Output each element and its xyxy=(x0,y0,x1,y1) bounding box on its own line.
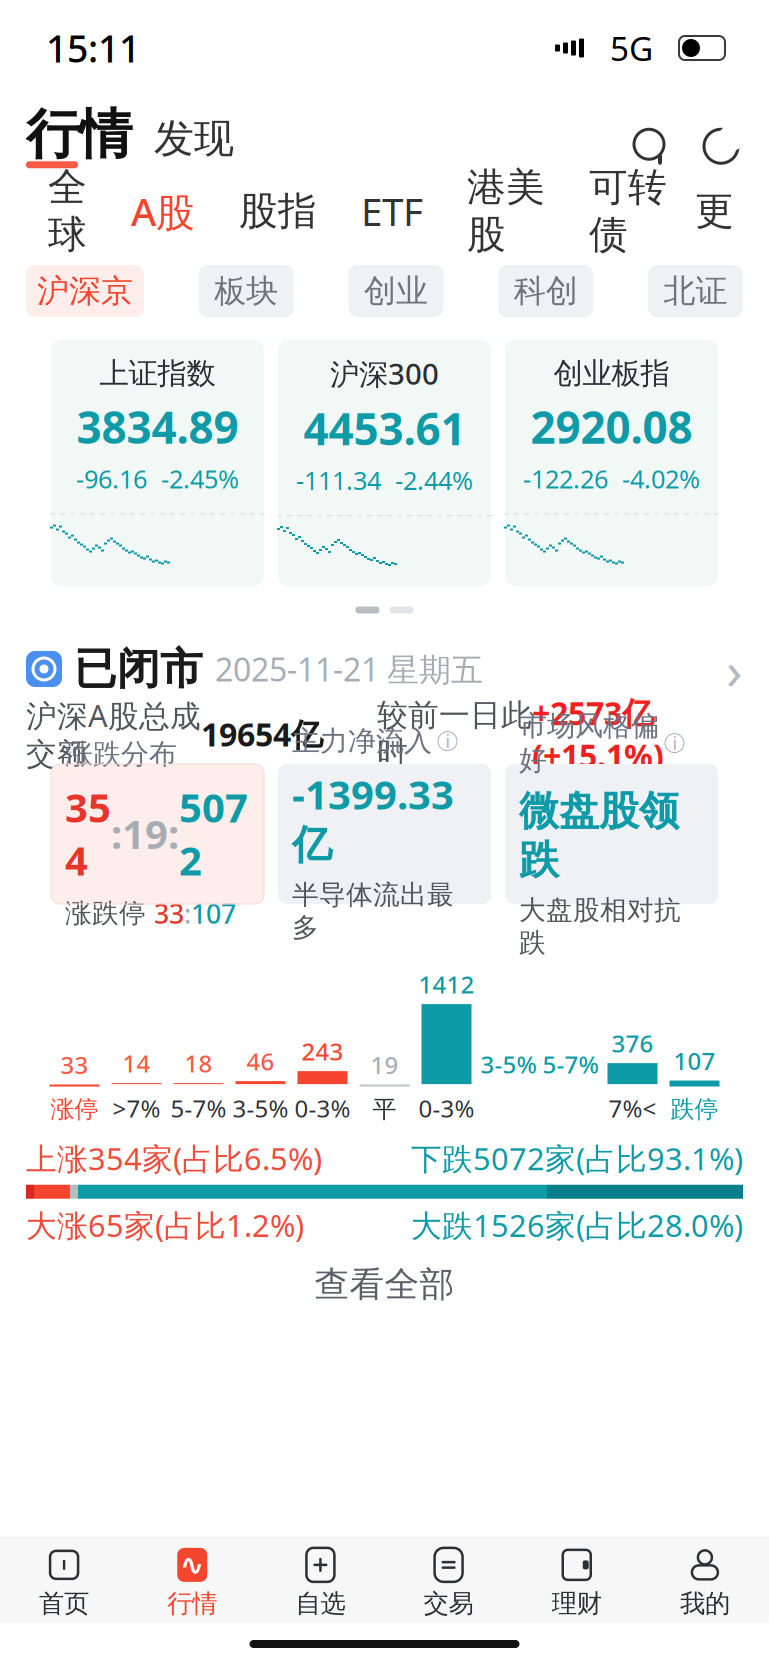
staticText: 243 xyxy=(301,1035,343,1067)
staticText: 0-3% xyxy=(418,1092,474,1124)
staticText: 107 xyxy=(673,1045,715,1076)
button[interactable]: 我的 xyxy=(641,1538,769,1623)
staticText: 市场风格偏好 xyxy=(519,709,659,777)
staticText: ∿ xyxy=(180,1548,205,1581)
staticText: A股 xyxy=(131,185,195,237)
staticText: 理财 xyxy=(552,1588,602,1619)
staticText: 自选 xyxy=(295,1588,345,1619)
staticText: 较前一日此时 xyxy=(377,696,532,772)
staticText: 跌停 xyxy=(670,1094,718,1124)
staticText: 3834.89 xyxy=(76,397,238,456)
staticText: 行情 xyxy=(167,1588,217,1619)
button[interactable]: 理财 xyxy=(513,1538,641,1623)
staticText: 107 xyxy=(191,896,236,931)
staticText: 涨跌分布 xyxy=(65,737,177,771)
staticText: 33 xyxy=(154,896,184,931)
button[interactable]: 交易 xyxy=(384,1538,513,1623)
staticText: -111.34 -2.44% xyxy=(296,463,473,497)
button[interactable]: 主力净流入 xyxy=(278,764,491,904)
button[interactable]: 北证 xyxy=(648,265,743,317)
staticText: 沪深300 xyxy=(330,354,439,393)
staticText: 板块 xyxy=(214,271,278,311)
staticText: 1412 xyxy=(418,968,474,1000)
button[interactable]: 创业板指 xyxy=(505,340,718,586)
button[interactable]: 发现 xyxy=(154,114,234,168)
staticText: >7% xyxy=(112,1092,160,1124)
button[interactable]: 自选 xyxy=(256,1538,384,1623)
staticText: ETF xyxy=(361,185,423,237)
staticText: 创业 xyxy=(364,271,428,311)
button[interactable]: 板块 xyxy=(199,265,294,317)
button[interactable]: 沪深300 xyxy=(278,340,491,586)
button[interactable]: 市场风格偏好 xyxy=(505,764,718,904)
button[interactable]: 已闭市 xyxy=(0,634,769,704)
staticText: : xyxy=(111,807,122,860)
staticText: 我的 xyxy=(680,1588,730,1619)
button[interactable]: 首页 xyxy=(0,1538,128,1623)
staticText: : xyxy=(168,807,179,860)
button[interactable]: 查看全部 xyxy=(0,1245,769,1323)
staticText: 下跌5072家(占比93.1%) xyxy=(411,1138,743,1179)
staticText: -1399.33亿 xyxy=(292,767,454,869)
staticText: 0-3% xyxy=(294,1092,350,1124)
button[interactable]: 更 xyxy=(689,187,740,235)
button[interactable]: ∿ xyxy=(128,1538,256,1623)
button[interactable]: 上证指数 xyxy=(51,340,264,586)
staticText: 股指 xyxy=(239,187,317,235)
button[interactable]: 全球 xyxy=(26,163,109,258)
staticText: 376 xyxy=(611,1027,653,1059)
button[interactable]: 港美股 xyxy=(445,163,567,258)
staticText: 3-5% xyxy=(480,1048,536,1080)
staticText: 创业板指 xyxy=(553,355,669,391)
button[interactable]: 搜索 xyxy=(625,120,673,168)
staticText: 大涨65家(占比1.2%) xyxy=(26,1205,304,1245)
staticText: 354 xyxy=(65,780,111,887)
staticText: 涨停 xyxy=(50,1094,98,1124)
button[interactable]: A股 xyxy=(109,185,217,237)
staticText: 涨跌停 xyxy=(65,897,154,930)
staticText: -122.26 -4.02% xyxy=(523,462,700,495)
staticText: : xyxy=(184,896,191,931)
staticText: 4453.61 xyxy=(303,399,465,457)
staticText: 19 xyxy=(370,1049,398,1080)
button[interactable]: 可转债 xyxy=(567,163,689,258)
staticText: 5072 xyxy=(179,780,248,887)
staticText: 2920.08 xyxy=(530,397,692,456)
button[interactable]: 夜间模式 xyxy=(699,124,743,168)
staticText: 7%< xyxy=(608,1092,656,1124)
button[interactable]: 沪深京 xyxy=(26,265,144,317)
staticText: i xyxy=(672,732,676,755)
staticText: 上涨354家(占比6.5%) xyxy=(26,1138,322,1179)
staticText: 可转债 xyxy=(589,163,667,258)
staticText: 微盘股领跌 xyxy=(519,786,679,885)
staticText: 科创 xyxy=(514,271,578,311)
button[interactable]: 涨跌分布 xyxy=(51,764,264,904)
staticText: 大跌1526家(占比28.0%) xyxy=(411,1205,743,1245)
staticText: 19654亿 xyxy=(201,713,323,755)
staticText: 查看全部 xyxy=(314,1263,454,1306)
staticText: 46 xyxy=(246,1045,274,1077)
staticText: 行情 xyxy=(26,102,132,167)
staticText: 2025-11-21 星期五 xyxy=(215,648,483,690)
staticText: 沪深A股总成交额 xyxy=(26,695,201,773)
staticText: 5-7% xyxy=(170,1092,226,1124)
button[interactable]: ETF xyxy=(339,185,445,237)
staticText: 发现 xyxy=(154,114,234,163)
staticText: 19 xyxy=(122,807,168,860)
staticText: 5-7% xyxy=(542,1048,598,1080)
staticText: 14 xyxy=(122,1047,150,1079)
button[interactable]: 创业 xyxy=(348,265,443,317)
button[interactable]: 科创 xyxy=(498,265,593,317)
button[interactable]: 股指 xyxy=(217,187,339,235)
button[interactable]: 行情 xyxy=(26,102,132,168)
staticText: 北证 xyxy=(663,271,727,311)
staticText: 大盘股相对抗跌 xyxy=(519,894,681,959)
staticText: 沪深京 xyxy=(37,271,133,311)
staticText: 更 xyxy=(695,187,734,235)
staticText: i xyxy=(445,730,449,753)
staticText: 3-5% xyxy=(232,1092,288,1124)
staticText: 主力净流入 xyxy=(292,724,432,758)
staticText: 33 xyxy=(60,1049,88,1080)
staticText: 平 xyxy=(372,1094,396,1124)
staticText: 已闭市 xyxy=(74,643,203,695)
